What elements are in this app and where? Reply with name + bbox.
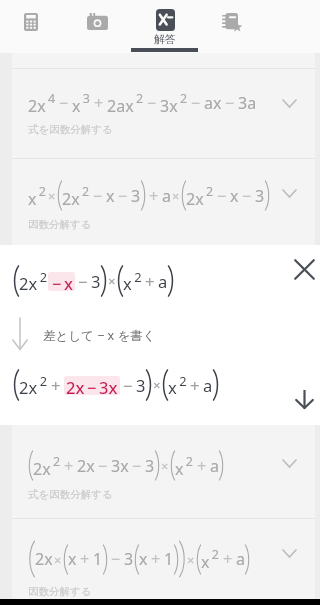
staticText: × (54, 551, 62, 568)
button[interactable]: 2x 4 (12, 69, 315, 158)
button[interactable]: 閉じる (294, 259, 315, 280)
staticText: − (52, 272, 62, 291)
staticText: 式を因数分解する (28, 488, 113, 501)
staticText: 2x 2 (33, 453, 61, 479)
staticText: a (162, 185, 171, 207)
staticText: 2ax 2 (107, 90, 144, 116)
staticText: + (151, 548, 161, 570)
staticText: x 2 (28, 183, 47, 209)
staticText: − (123, 374, 133, 396)
staticText: + (80, 548, 90, 570)
staticText: + (51, 374, 61, 396)
staticText: − (93, 185, 103, 207)
staticText: 2x (77, 455, 95, 477)
staticText: − (98, 455, 108, 477)
staticText: + (149, 185, 159, 207)
staticText: − (59, 92, 69, 114)
staticText: − (132, 455, 142, 477)
staticText: 3x 2 (160, 90, 188, 116)
staticText: a (210, 455, 219, 477)
staticText: x (139, 548, 148, 570)
staticText: 2x (66, 376, 85, 395)
staticText: − (118, 185, 128, 207)
staticText: × (161, 457, 169, 474)
staticText: − (87, 376, 97, 395)
staticText: 3 (145, 455, 155, 477)
staticText: 3 (91, 270, 101, 292)
staticText: 3 (131, 185, 141, 207)
staticText: 2x 2 (19, 372, 48, 399)
staticText: 1 (164, 548, 174, 570)
staticText: 3 (136, 374, 146, 396)
staticText: + (145, 270, 155, 292)
staticText: − (111, 548, 121, 570)
staticText: 3 (124, 548, 134, 570)
staticText: x (68, 548, 77, 570)
button[interactable]: Notebook (198, 0, 265, 53)
staticText: x 2 (175, 453, 194, 479)
button[interactable]: 2x 2 (12, 429, 315, 518)
staticText: 3a (238, 92, 257, 114)
staticText: x 2 (201, 546, 220, 572)
staticText: − (217, 185, 227, 207)
staticText: + (223, 548, 233, 570)
staticText: 式を因数分解する (28, 123, 113, 136)
staticText: + (64, 455, 74, 477)
staticText: × (48, 187, 56, 204)
staticText: ax (204, 92, 222, 114)
staticText: a (236, 548, 245, 570)
staticText: x (64, 272, 73, 291)
staticText: 3x (99, 376, 118, 395)
staticText: a (203, 374, 213, 396)
staticText: 2x 4 (28, 90, 56, 116)
button[interactable]: Camera (64, 0, 131, 53)
button[interactable]: 次のステップ (295, 389, 314, 409)
staticText: 2x 2 (19, 268, 48, 295)
staticText: − (225, 92, 235, 114)
staticText: × (187, 551, 195, 568)
staticText: x 3 (72, 90, 91, 116)
staticText: x 2 (168, 372, 187, 399)
staticText: 1 (93, 548, 103, 570)
staticText: − (78, 270, 88, 292)
button[interactable]: 2x (12, 519, 315, 599)
staticText: 差として − x を書く (43, 327, 156, 344)
button[interactable]: x 2 (12, 159, 315, 248)
staticText: 3 (255, 185, 265, 207)
staticText: × (153, 376, 161, 394)
staticText: x (106, 185, 115, 207)
button[interactable]: 解答 (131, 0, 198, 53)
staticText: − (147, 92, 157, 114)
staticText: 解答 (154, 32, 176, 46)
staticText: × (172, 187, 180, 204)
staticText: a (158, 270, 168, 292)
button[interactable]: Calculator (0, 0, 64, 53)
staticText: 2x 2 (62, 183, 90, 209)
staticText: 因数分解する (28, 585, 92, 598)
staticText: × (108, 272, 116, 290)
staticText: + (197, 455, 207, 477)
staticText: − (191, 92, 201, 114)
staticText: 2x 2 (186, 183, 214, 209)
staticText: 3x (111, 455, 129, 477)
staticText: + (190, 374, 200, 396)
staticText: 2x (35, 548, 53, 570)
staticText: + (94, 92, 104, 114)
staticText: 因数分解する (28, 218, 92, 231)
staticText: − (242, 185, 252, 207)
staticText: x (230, 185, 239, 207)
staticText: x 2 (123, 268, 142, 295)
